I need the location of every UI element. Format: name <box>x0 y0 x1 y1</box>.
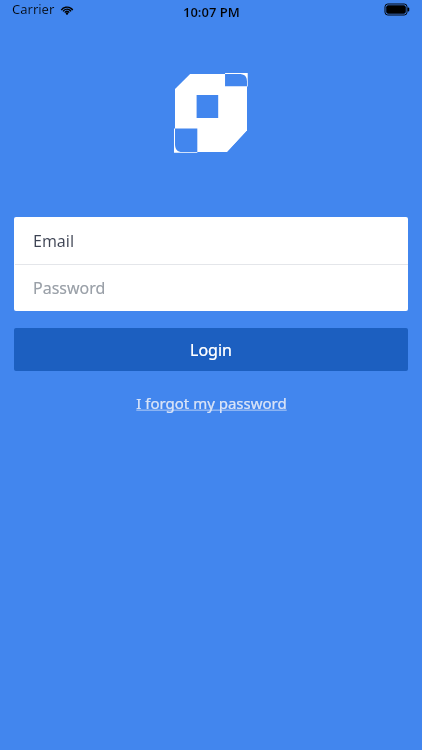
button[interactable]: Password <box>14 265 408 311</box>
staticText: Carrier <box>12 0 55 18</box>
button[interactable]: I forgot my password <box>126 389 297 417</box>
button[interactable]: Email <box>14 217 408 264</box>
staticText: Password <box>33 277 106 299</box>
staticText: Login <box>190 339 232 361</box>
staticText: Email <box>33 230 75 252</box>
staticText: 10:07 PM <box>183 3 240 21</box>
button[interactable]: Login <box>14 328 408 371</box>
staticText: I forgot my password <box>136 393 287 413</box>
